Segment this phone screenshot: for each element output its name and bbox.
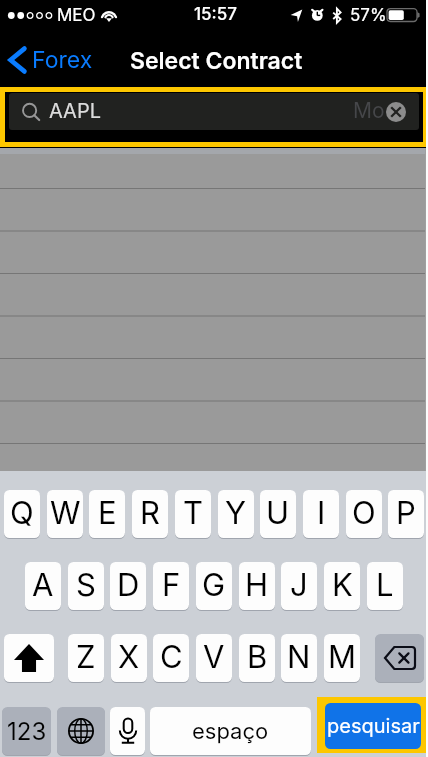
- staticText: I: [317, 494, 326, 532]
- staticText: F: [162, 566, 181, 604]
- staticText: Q: [10, 494, 34, 532]
- button[interactable]: Clear text: [386, 102, 406, 122]
- button[interactable]: Y: [218, 490, 254, 538]
- staticText: M: [328, 638, 357, 676]
- button[interactable]: P: [388, 490, 424, 538]
- staticText: U: [266, 494, 290, 532]
- staticText: Y: [225, 494, 247, 532]
- staticText: S: [76, 566, 96, 604]
- button[interactable]: S: [68, 562, 104, 610]
- button[interactable]: V: [196, 634, 232, 682]
- staticText: R: [140, 494, 160, 532]
- button[interactable]: pesquisar: [317, 697, 426, 753]
- button[interactable]: H: [239, 562, 275, 610]
- button[interactable]: Shift: [4, 634, 54, 682]
- staticText: X: [118, 638, 140, 676]
- staticText: B: [247, 638, 268, 676]
- staticText: P: [396, 494, 416, 532]
- button[interactable]: Z: [68, 634, 104, 682]
- button[interactable]: I: [303, 490, 339, 538]
- button[interactable]: D: [110, 562, 146, 610]
- staticText: G: [202, 566, 226, 604]
- button[interactable]: Next keyboard: [57, 707, 105, 755]
- staticText: H: [245, 566, 269, 604]
- staticText: 123: [7, 717, 47, 746]
- staticText: W: [50, 494, 81, 532]
- button[interactable]: A: [25, 562, 61, 610]
- button[interactable]: E: [89, 490, 125, 538]
- staticText: E: [98, 494, 117, 532]
- button[interactable]: Backspace: [375, 634, 424, 682]
- button[interactable]: L: [367, 562, 403, 610]
- button[interactable]: X: [111, 634, 147, 682]
- button[interactable]: 123: [2, 707, 51, 755]
- staticText: O: [352, 494, 376, 532]
- staticText: C: [160, 638, 183, 676]
- staticText: Z: [76, 638, 96, 676]
- button[interactable]: N: [281, 634, 317, 682]
- button[interactable]: M: [324, 634, 360, 682]
- button[interactable]: Dictate: [110, 707, 145, 755]
- staticText: K: [332, 566, 353, 604]
- button[interactable]: O: [346, 490, 382, 538]
- button[interactable]: U: [260, 490, 296, 538]
- button[interactable]: T: [175, 490, 211, 538]
- button[interactable]: espaço: [150, 707, 311, 755]
- staticText: J: [290, 566, 308, 604]
- staticText: T: [183, 494, 204, 532]
- staticText: espaço: [192, 718, 269, 745]
- staticText: Select Contract: [130, 47, 303, 75]
- staticText: MEO: [57, 5, 96, 26]
- button[interactable]: J: [281, 562, 317, 610]
- button[interactable]: C: [153, 634, 189, 682]
- button[interactable]: K: [324, 562, 360, 610]
- staticText: 57%: [350, 5, 387, 26]
- staticText: V: [203, 638, 225, 676]
- button[interactable]: R: [132, 490, 168, 538]
- staticText: A: [32, 566, 54, 604]
- button[interactable]: F: [153, 562, 189, 610]
- staticText: L: [376, 566, 394, 604]
- button[interactable]: W: [47, 490, 83, 538]
- staticText: N: [287, 638, 311, 676]
- staticText: Forex: [32, 46, 93, 74]
- button[interactable]: Q: [4, 490, 40, 538]
- staticText: D: [117, 566, 140, 604]
- button[interactable]: Forex: [0, 38, 103, 82]
- button[interactable]: B: [239, 634, 275, 682]
- button[interactable]: AAPL: [9, 93, 419, 130]
- staticText: pesquisar: [327, 714, 420, 738]
- staticText: 15:57: [194, 4, 237, 25]
- staticText: AAPL: [49, 99, 101, 123]
- staticText: Mo: [353, 98, 385, 123]
- button[interactable]: G: [196, 562, 232, 610]
